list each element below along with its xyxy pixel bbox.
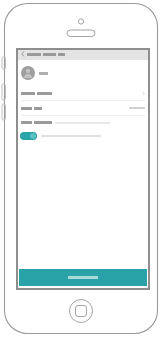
button[interactable]: Back bbox=[19, 49, 26, 59]
button[interactable] bbox=[16, 86, 150, 100]
button[interactable] bbox=[19, 269, 147, 286]
button[interactable]: Toggle bbox=[20, 132, 37, 140]
button[interactable] bbox=[16, 60, 150, 86]
button[interactable] bbox=[16, 101, 150, 115]
button[interactable]: Toggle bbox=[16, 129, 150, 143]
